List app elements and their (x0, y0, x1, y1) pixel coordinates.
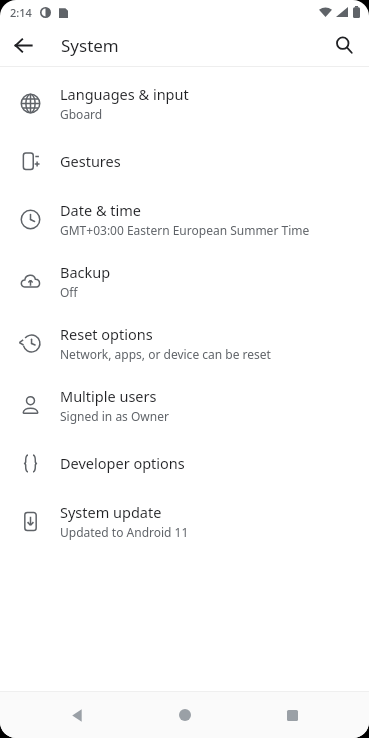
staticText: Off (60, 284, 78, 300)
button[interactable]: Reset options (0, 312, 369, 374)
button[interactable]: System update (0, 490, 369, 552)
button[interactable]: Home (155, 692, 215, 738)
staticText: Developer options (60, 453, 185, 473)
button[interactable]: Date & time (0, 188, 369, 250)
staticText: Multiple users (60, 386, 157, 406)
staticText: Signed in as Owner (60, 408, 169, 424)
staticText: 2:14 (10, 5, 32, 20)
staticText: Backup (60, 262, 111, 282)
staticText: Gboard (60, 106, 103, 122)
staticText: Date & time (60, 200, 141, 220)
button[interactable]: Recent apps (262, 692, 322, 738)
button[interactable]: Navigate up (7, 29, 39, 61)
button[interactable]: Gestures (0, 134, 369, 188)
staticText: Updated to Android 11 (60, 524, 189, 540)
button[interactable]: Backup (0, 250, 369, 312)
button[interactable]: Developer options (0, 436, 369, 490)
button[interactable]: Search settings (327, 28, 361, 62)
staticText: Languages & input (60, 84, 189, 104)
staticText: Gestures (60, 151, 121, 171)
staticText: System (61, 34, 119, 57)
button[interactable]: Back (47, 692, 107, 738)
staticText: GMT+03:00 Eastern European Summer Time (60, 222, 310, 238)
button[interactable]: Languages & input (0, 72, 369, 134)
staticText: System update (60, 502, 162, 522)
staticText: Network, apps, or device can be reset (60, 346, 271, 362)
button[interactable]: Multiple users (0, 374, 369, 436)
staticText: Reset options (60, 324, 153, 344)
